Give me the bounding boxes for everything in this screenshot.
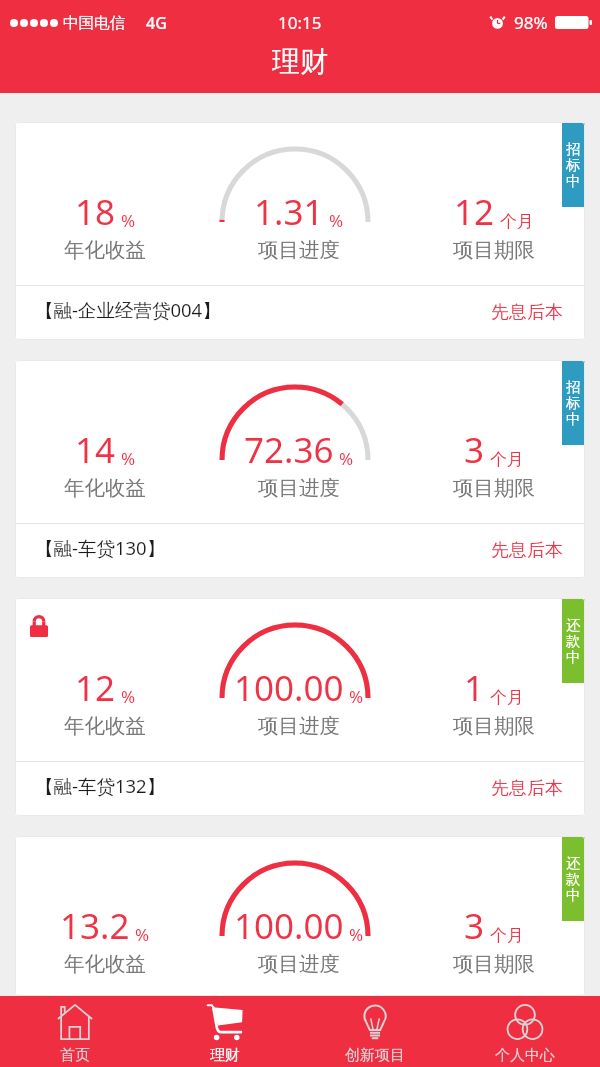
staticText: 项目进度: [258, 475, 340, 501]
staticText: 13.2: [60, 902, 130, 950]
staticText: 3: [464, 426, 485, 474]
button[interactable]: 14: [15, 360, 585, 578]
staticText: 招: [566, 378, 581, 394]
staticText: 3: [464, 902, 485, 950]
staticText: 中: [566, 172, 581, 188]
staticText: 项目期限: [453, 475, 535, 501]
staticText: 项目进度: [258, 713, 340, 739]
staticText: %: [121, 685, 136, 708]
staticText: 年化收益: [64, 475, 146, 501]
staticText: 理财: [210, 1046, 240, 1065]
button[interactable]: 13.2: [15, 836, 585, 996]
staticText: 项目进度: [258, 237, 340, 263]
staticText: 先息后本: [491, 539, 563, 562]
staticText: 中: [566, 410, 581, 426]
staticText: 12: [75, 664, 116, 712]
staticText: 项目期限: [453, 237, 535, 263]
button[interactable]: 18: [15, 122, 585, 340]
staticText: 标: [566, 156, 581, 172]
staticText: 14: [75, 426, 116, 474]
staticText: 【融-车贷130】: [35, 535, 166, 560]
staticText: 100.00: [234, 664, 344, 712]
staticText: 1.31: [254, 188, 324, 236]
button[interactable]: 12: [15, 598, 585, 816]
staticText: %: [329, 209, 344, 232]
staticText: 还: [566, 616, 581, 632]
staticText: 年化收益: [64, 237, 146, 263]
staticText: 个月: [490, 687, 524, 708]
staticText: 首页: [60, 1046, 90, 1065]
staticText: %: [121, 447, 136, 470]
button[interactable]: 首页: [0, 996, 150, 1067]
staticText: 1: [464, 664, 485, 712]
staticText: 款: [566, 632, 581, 648]
staticText: 先息后本: [491, 301, 563, 324]
staticText: 个月: [490, 449, 524, 470]
staticText: 18: [75, 188, 116, 236]
staticText: %: [339, 447, 354, 470]
staticText: 【融-车贷132】: [35, 773, 166, 798]
staticText: 4G: [146, 12, 167, 34]
button[interactable]: 理财: [150, 996, 300, 1067]
staticText: 个月: [490, 925, 524, 946]
staticText: 还: [566, 854, 581, 870]
staticText: 项目期限: [453, 713, 535, 739]
staticText: 创新项目: [345, 1046, 405, 1065]
staticText: 年化收益: [64, 951, 146, 977]
staticText: 标: [566, 394, 581, 410]
staticText: %: [135, 923, 150, 946]
staticText: 个月: [500, 211, 534, 232]
staticText: 98%: [514, 11, 548, 34]
staticText: 招: [566, 140, 581, 156]
staticText: 年化收益: [64, 713, 146, 739]
staticText: %: [121, 209, 136, 232]
staticText: %: [349, 923, 364, 946]
staticText: 12: [454, 188, 495, 236]
staticText: 项目期限: [453, 951, 535, 977]
staticText: 先息后本: [491, 777, 563, 800]
staticText: 72.36: [244, 426, 334, 474]
staticText: 10:15: [278, 11, 322, 34]
staticText: 个人中心: [495, 1046, 555, 1065]
staticText: 理财: [272, 44, 328, 79]
staticText: 100.00: [234, 902, 344, 950]
staticText: 中: [566, 648, 581, 664]
staticText: 项目进度: [258, 951, 340, 977]
staticText: 款: [566, 870, 581, 886]
staticText: %: [349, 685, 364, 708]
staticText: 【融-企业经营贷004】: [35, 297, 221, 322]
staticText: 中国电信: [63, 13, 125, 33]
other: 已锁定: [30, 615, 48, 637]
button[interactable]: 个人中心: [450, 996, 600, 1067]
button[interactable]: 创新项目: [300, 996, 450, 1067]
staticText: 中: [566, 886, 581, 902]
